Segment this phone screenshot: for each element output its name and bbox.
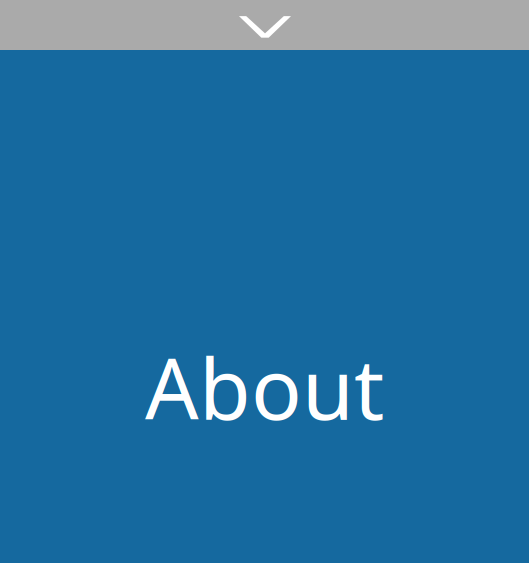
button[interactable]: Dismiss: [0, 0, 529, 50]
staticText: About: [145, 331, 384, 443]
